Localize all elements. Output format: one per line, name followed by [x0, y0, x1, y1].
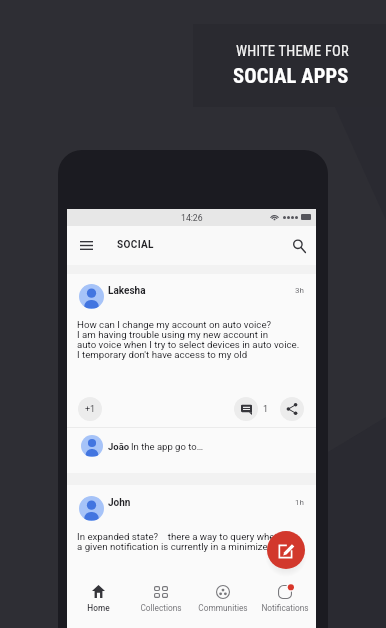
staticText: In expanded state? there a way to query … [77, 531, 292, 542]
staticText: John [108, 497, 131, 509]
button[interactable]: Search [282, 226, 316, 265]
staticText: Lakesha [108, 285, 146, 297]
staticText: In the app go to… [131, 441, 204, 452]
button[interactable]: Comments [234, 397, 258, 421]
button[interactable]: Notifications [254, 576, 316, 628]
staticText: Home [87, 603, 110, 613]
staticText: I am having trouble using my new account… [77, 329, 268, 340]
staticText: Collections [140, 603, 182, 613]
staticText: auto voice when I try to select devices … [77, 339, 300, 350]
staticText: João [108, 441, 130, 452]
staticText: 14:26 [181, 213, 203, 223]
staticText: 3h [295, 286, 304, 295]
button[interactable]: Communities [192, 576, 254, 628]
staticText: 1h [295, 498, 304, 507]
staticText: I temporary don't have access to my old [77, 349, 248, 360]
staticText: Notifications [261, 603, 309, 613]
staticText: SOCIAL [117, 239, 154, 251]
staticText: SOCIAL APPS [233, 64, 349, 88]
button[interactable]: Share [280, 397, 304, 421]
staticText: WHITE THEME FOR [236, 43, 349, 60]
button[interactable]: Menu [70, 226, 102, 265]
button[interactable]: +1 [78, 397, 102, 421]
button[interactable]: Collections [130, 576, 192, 628]
staticText: a given notification is currently in a m… [77, 541, 274, 552]
button[interactable]: Home [67, 576, 130, 628]
staticText: 1 [263, 404, 269, 415]
button[interactable]: Compose new post [267, 531, 305, 569]
button[interactable]: João [67, 428, 316, 473]
staticText: Communities [198, 603, 248, 613]
staticText: How can I change my account on auto voic… [77, 319, 272, 330]
staticText: +1 [85, 404, 96, 415]
